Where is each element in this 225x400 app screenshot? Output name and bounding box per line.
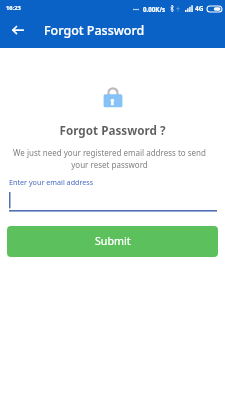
staticText: 0.00K/s	[143, 5, 166, 13]
staticText: Forgot Password ?	[0, 122, 225, 138]
staticText: Forgot Password	[44, 22, 145, 39]
staticText: Enter your email address	[9, 177, 94, 187]
staticText: We just need your registered email addre…	[8, 147, 211, 170]
staticText: Submit	[95, 234, 131, 249]
button[interactable]: Back	[8, 21, 26, 39]
button[interactable]: Enter your email address	[9, 176, 217, 212]
staticText: 16:23	[6, 4, 21, 12]
staticText: 4G	[195, 4, 204, 13]
button[interactable]: Submit	[7, 226, 218, 257]
